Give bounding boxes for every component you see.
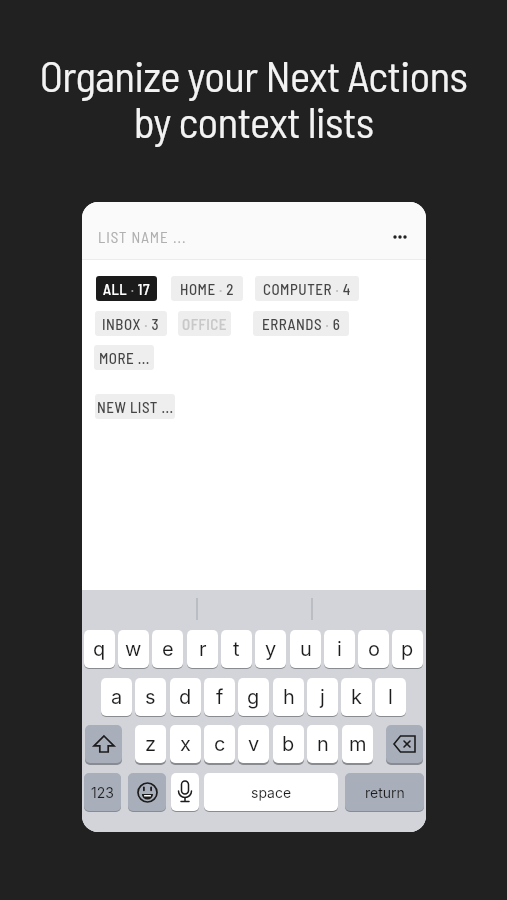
button[interactable]: g	[238, 678, 269, 716]
button[interactable]: COMPUTER · 4	[255, 276, 359, 301]
button[interactable]: d	[170, 678, 201, 716]
staticText: u	[300, 637, 312, 661]
staticText: return	[365, 784, 405, 801]
staticText: k	[351, 685, 362, 709]
button[interactable]: y	[255, 630, 286, 668]
staticText: d	[179, 685, 192, 709]
staticText: z	[145, 732, 157, 756]
staticText: y	[265, 637, 277, 661]
staticText: g	[247, 685, 260, 709]
staticText: s	[145, 685, 156, 709]
staticText: x	[180, 732, 191, 756]
staticText: ERRANDS · 6	[262, 315, 341, 333]
staticText: h	[283, 685, 295, 709]
button[interactable]	[386, 725, 423, 763]
button[interactable]: h	[273, 678, 304, 716]
button[interactable]: n	[307, 725, 338, 763]
staticText: Organize your Next Actions	[0, 49, 507, 101]
button[interactable]: s	[135, 678, 166, 716]
staticText: w	[125, 637, 142, 661]
button[interactable]: space	[204, 773, 338, 811]
button[interactable]: i	[324, 630, 355, 668]
staticText: NEW LIST ...	[97, 398, 174, 416]
button[interactable]: z	[135, 725, 166, 763]
button[interactable]: l	[375, 678, 406, 716]
button[interactable]: o	[358, 630, 389, 668]
staticText: by context lists	[0, 95, 507, 147]
staticText: b	[282, 732, 295, 756]
button[interactable]	[171, 773, 199, 811]
button[interactable]: w	[118, 630, 149, 668]
staticText: HOME · 2	[180, 280, 234, 298]
staticText: n	[317, 732, 329, 756]
staticText: m	[349, 732, 367, 756]
button[interactable]	[382, 222, 418, 252]
staticText: o	[368, 637, 380, 661]
staticText: INBOX · 3	[102, 315, 160, 333]
button[interactable]	[128, 773, 166, 811]
button[interactable]: p	[392, 630, 423, 668]
staticText: OFFICE	[182, 315, 228, 333]
staticText: v	[248, 732, 260, 756]
button[interactable]: j	[307, 678, 338, 716]
staticText: j	[320, 685, 325, 709]
staticText: LIST NAME ...	[98, 228, 187, 246]
staticText: ALL · 17	[103, 280, 150, 298]
staticText: t	[233, 637, 240, 661]
button[interactable]: INBOX · 3	[95, 311, 167, 336]
staticText: f	[216, 685, 224, 709]
button[interactable]: OFFICE	[178, 311, 231, 336]
staticText: e	[162, 637, 174, 661]
button[interactable]: u	[290, 630, 321, 668]
button[interactable]: f	[204, 678, 235, 716]
staticText: COMPUTER · 4	[263, 280, 351, 298]
staticText: p	[401, 637, 414, 661]
button[interactable]: q	[84, 630, 115, 668]
button[interactable]: HOME · 2	[171, 276, 243, 301]
button[interactable]: a	[101, 678, 132, 716]
button[interactable]: MORE ...	[94, 345, 154, 370]
button[interactable]	[82, 202, 372, 259]
staticText: i	[337, 637, 342, 661]
button[interactable]: NEW LIST ...	[95, 394, 175, 419]
staticText: 123	[91, 784, 114, 801]
staticText: r	[199, 637, 207, 661]
button[interactable]: x	[170, 725, 201, 763]
button[interactable]: t	[221, 630, 252, 668]
button[interactable]: r	[187, 630, 218, 668]
button[interactable]	[85, 725, 122, 763]
button[interactable]: k	[341, 678, 372, 716]
staticText: l	[388, 685, 393, 709]
staticText: MORE ...	[99, 349, 150, 367]
button[interactable]: 123	[84, 773, 121, 811]
staticText: q	[93, 637, 106, 661]
button[interactable]: m	[342, 725, 373, 763]
button[interactable]: return	[345, 773, 424, 811]
button[interactable]: ERRANDS · 6	[253, 311, 349, 336]
staticText: c	[214, 732, 226, 756]
button[interactable]: v	[238, 725, 269, 763]
staticText: space	[251, 784, 292, 801]
staticText: a	[111, 685, 123, 709]
button[interactable]: ALL · 17	[96, 276, 157, 301]
button[interactable]: b	[273, 725, 304, 763]
button[interactable]: e	[152, 630, 183, 668]
button[interactable]: c	[204, 725, 235, 763]
